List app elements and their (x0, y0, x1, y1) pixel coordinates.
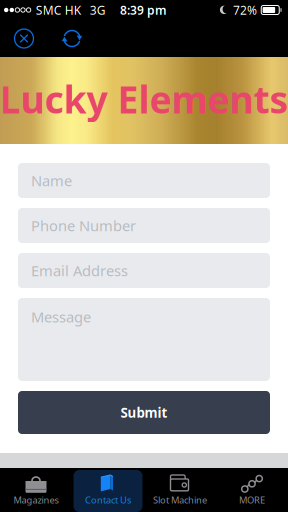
staticText: 8:39 pm (120, 2, 167, 18)
button[interactable]: Slot Machine (145, 470, 214, 512)
button[interactable]: Close (10, 20, 38, 57)
staticText: Name (31, 171, 72, 190)
staticText: Lucky Elements (0, 74, 288, 124)
staticText: 72% (233, 2, 257, 18)
staticText: Email Address (31, 261, 128, 280)
staticText: Phone Number (31, 216, 136, 235)
staticText: MORE (239, 494, 265, 506)
button[interactable]: Magazines (1, 470, 70, 512)
staticText: 3G (90, 2, 106, 18)
staticText: Contact Us (85, 494, 131, 506)
staticText: Slot Machine (153, 494, 207, 506)
button[interactable]: Submit (18, 391, 270, 434)
button[interactable]: MORE (217, 470, 286, 512)
staticText: SMC HK (36, 2, 81, 18)
button[interactable]: Contact Us (73, 470, 142, 512)
staticText: Magazines (13, 494, 58, 506)
staticText: Message (31, 307, 91, 326)
staticText: Submit (120, 404, 167, 421)
button[interactable]: Refresh (58, 20, 86, 57)
